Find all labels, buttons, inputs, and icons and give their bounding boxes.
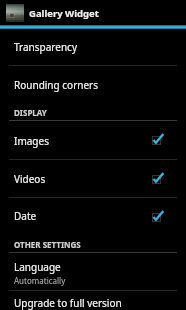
staticText: Rounding corners (14, 78, 99, 92)
staticText: Upgrade to full version (14, 296, 122, 310)
staticText: Gallery Widget (29, 7, 99, 20)
button[interactable]: Language (0, 253, 186, 290)
staticText: Videos (14, 172, 46, 186)
staticText: Images (14, 134, 49, 148)
button[interactable]: Rounding corners (0, 66, 186, 104)
other: Gallery Widget icon (6, 4, 24, 22)
staticText: Transparency (14, 40, 77, 54)
staticText: OTHER SETTINGS (14, 239, 81, 250)
staticText: Automatically (14, 275, 66, 286)
button[interactable]: Date (0, 198, 186, 236)
button[interactable]: Transparency (0, 29, 186, 65)
staticText: Language (14, 260, 61, 274)
staticText: DISPLAY (14, 107, 47, 118)
button[interactable]: Gallery Widget icon (0, 0, 186, 25)
button[interactable]: Upgrade to full version (0, 291, 186, 310)
button[interactable]: Videos (0, 160, 186, 197)
button[interactable]: Images (0, 121, 186, 159)
staticText: Date (14, 209, 37, 223)
